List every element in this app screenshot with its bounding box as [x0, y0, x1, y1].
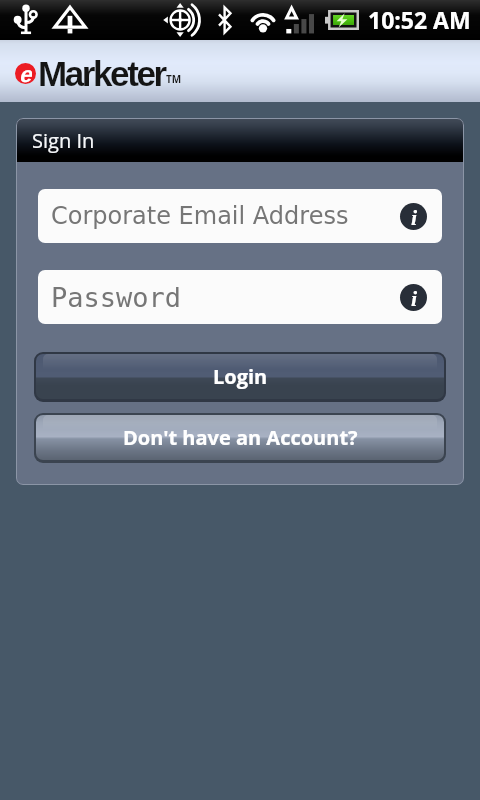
staticText: i [411, 286, 418, 310]
button[interactable]: Password [38, 270, 442, 324]
staticText: TM [166, 72, 182, 86]
staticText: 10:52 AM [368, 4, 471, 35]
button[interactable]: Corporate Email Address [38, 189, 442, 243]
staticText: Marketer [38, 54, 165, 93]
staticText: Corporate Email Address [51, 202, 349, 230]
staticText: e [19, 62, 32, 83]
staticText: Login [213, 363, 268, 390]
button[interactable]: Info about Corporate Email Address [400, 203, 427, 230]
staticText: Sign In [32, 127, 95, 154]
button[interactable]: Info about Password [400, 284, 427, 311]
button[interactable]: Login [36, 354, 444, 399]
staticText: Password [51, 282, 182, 313]
staticText: i [411, 205, 418, 229]
button[interactable]: Don't have an Account? [36, 415, 444, 460]
staticText: Don't have an Account? [123, 424, 358, 451]
